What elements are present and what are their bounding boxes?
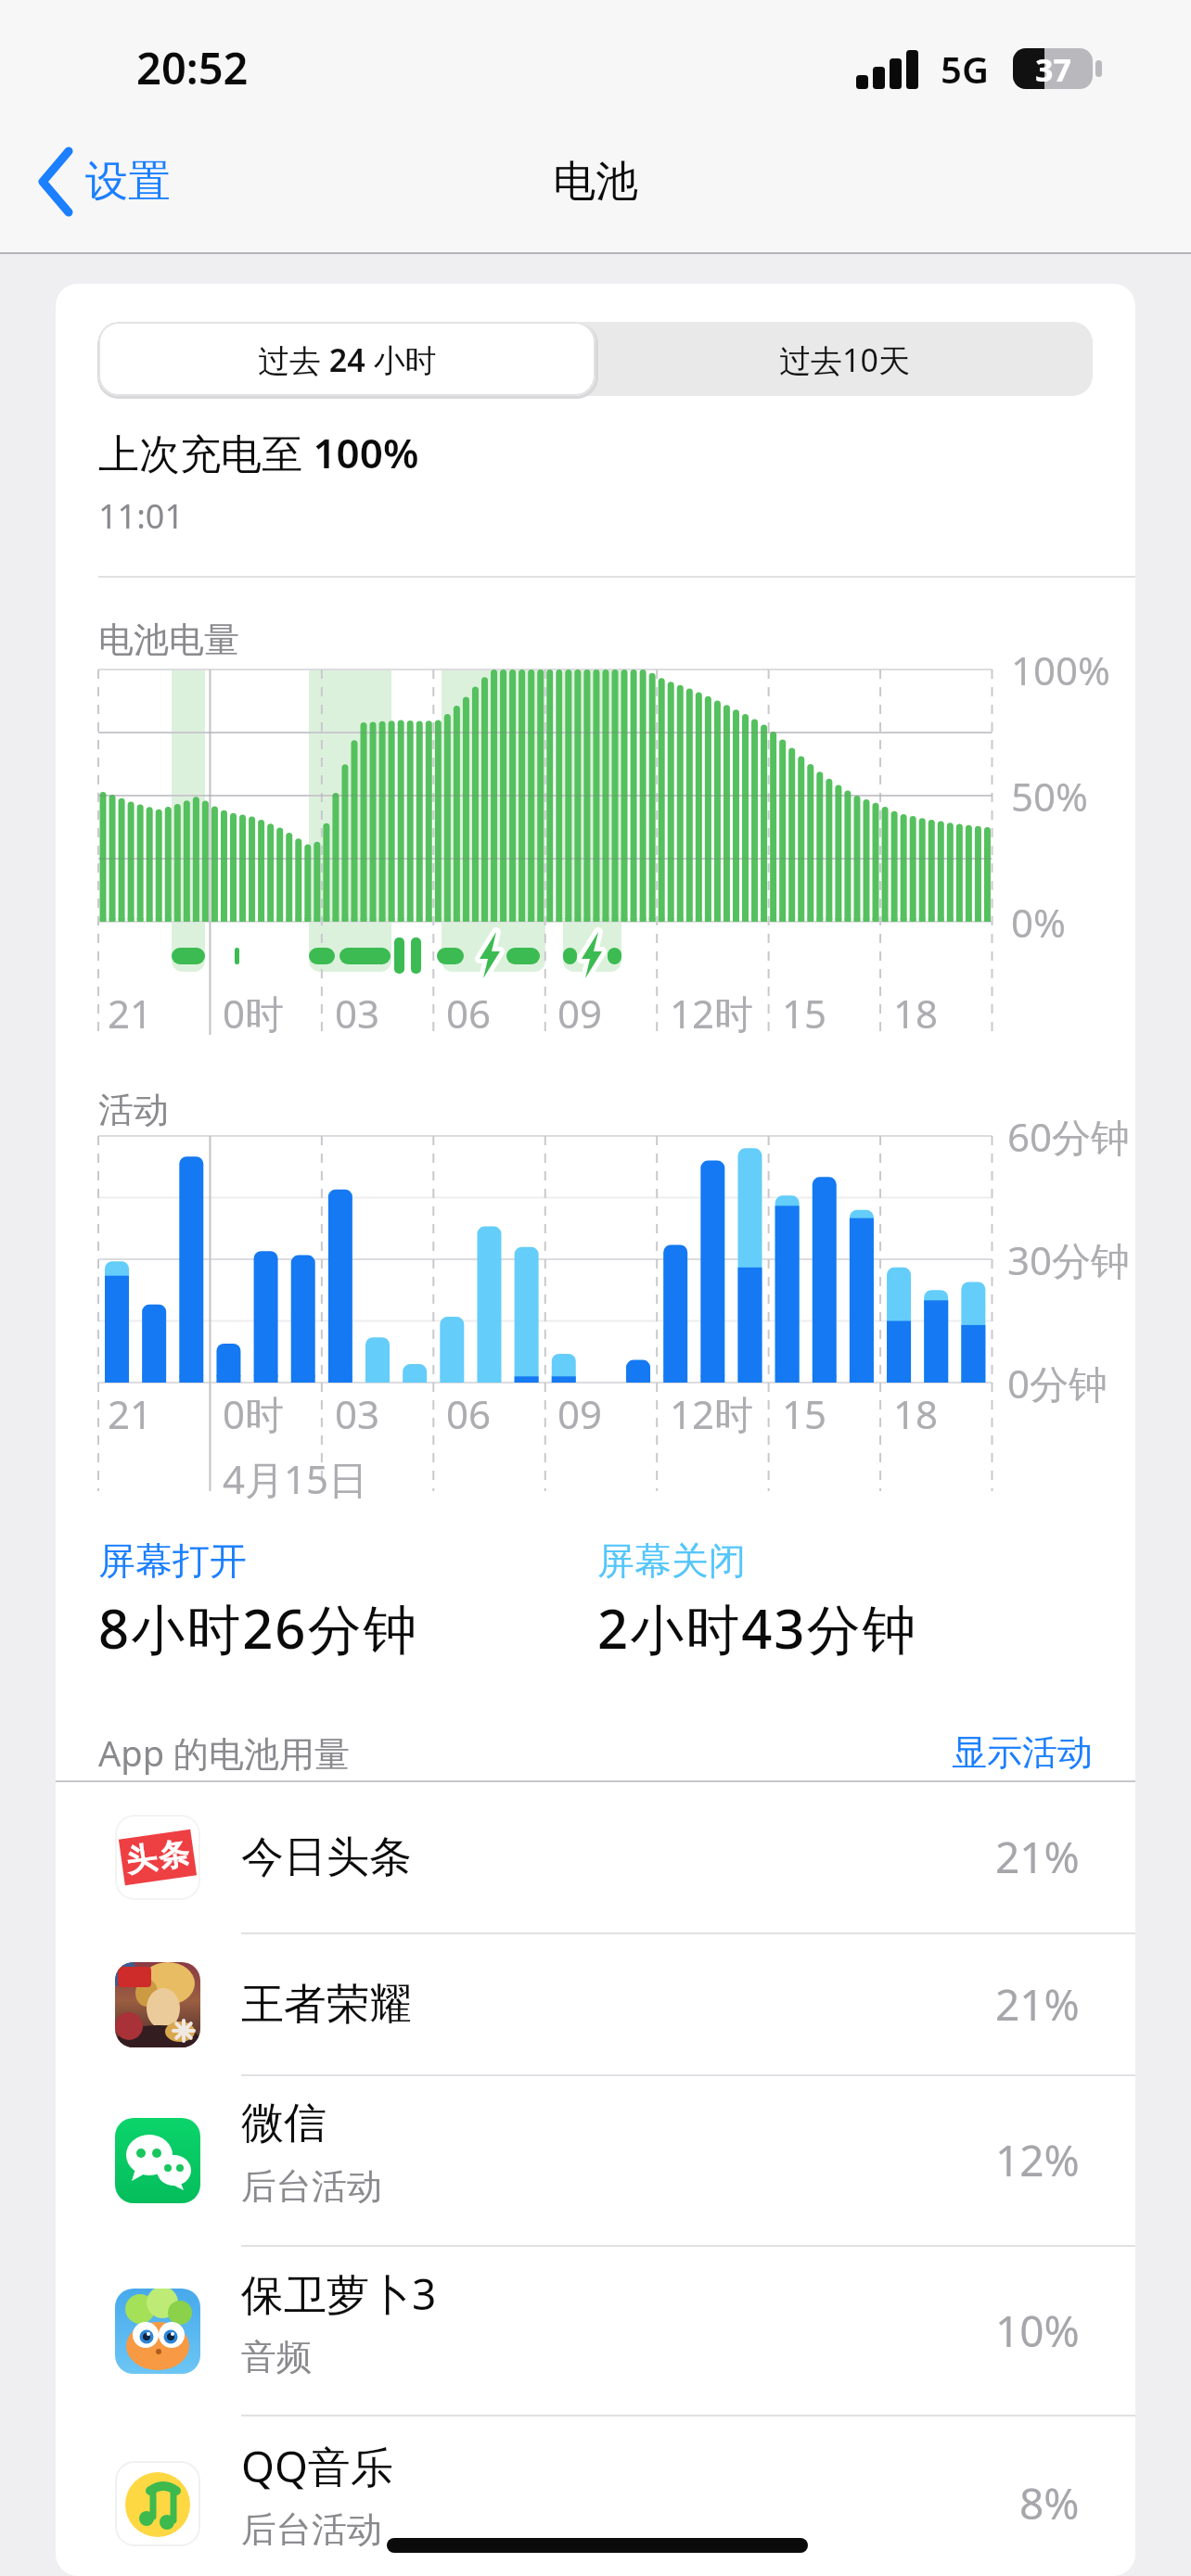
staticText: 20:52: [136, 38, 249, 97]
staticText: 屏幕关闭: [597, 1537, 746, 1584]
staticText: 电池: [553, 155, 638, 209]
button[interactable]: [56, 1933, 1135, 2075]
staticText: 音频: [241, 2335, 312, 2379]
staticText: 15: [782, 1387, 827, 1440]
staticText: 06: [446, 987, 492, 1039]
staticText: 18: [893, 987, 939, 1039]
staticText: 上次充电至 100%: [98, 425, 419, 480]
staticText: 06: [446, 1387, 492, 1440]
staticText: 18: [893, 1387, 939, 1440]
staticText: 09: [557, 987, 603, 1039]
button[interactable]: [56, 2075, 1135, 2246]
staticText: 21%: [995, 1828, 1080, 1886]
staticText: 8%: [1019, 2474, 1080, 2532]
staticText: 显示活动: [952, 1730, 1093, 1775]
staticText: 15: [782, 987, 827, 1039]
staticText: QQ音乐: [241, 2437, 393, 2495]
button[interactable]: [56, 2416, 1135, 2576]
staticText: 09: [557, 1387, 603, 1440]
button[interactable]: [56, 2246, 1135, 2416]
staticText: 屏幕打开: [98, 1537, 247, 1584]
staticText: 37: [1035, 48, 1071, 91]
staticText: 21: [108, 987, 153, 1039]
staticText: 微信: [241, 2097, 327, 2150]
staticText: 11:01: [98, 493, 185, 539]
staticText: 50%: [1011, 770, 1088, 823]
staticText: 电池电量: [98, 618, 239, 662]
staticText: 保卫萝卜3: [241, 2264, 437, 2323]
staticText: 12%: [995, 2131, 1080, 2189]
staticText: 后台活动: [241, 2164, 382, 2209]
staticText: 过去 24 小时: [258, 338, 437, 381]
staticText: 10%: [995, 2302, 1080, 2360]
staticText: 设置: [85, 155, 171, 209]
staticText: 王者荣耀: [241, 1978, 412, 2032]
staticText: 活动: [98, 1088, 169, 1132]
staticText: 5G: [941, 44, 989, 94]
button[interactable]: [56, 1781, 1135, 1933]
staticText: 12时: [670, 987, 754, 1039]
staticText: 100%: [1011, 644, 1110, 696]
staticText: App 的电池用量: [98, 1728, 350, 1777]
staticText: 03: [335, 1387, 380, 1440]
staticText: 03: [335, 987, 380, 1039]
staticText: 过去10天: [779, 338, 910, 381]
staticText: 0%: [1011, 896, 1066, 949]
button[interactable]: [98, 322, 595, 396]
staticText: 60分钟: [1007, 1110, 1131, 1163]
staticText: 21: [108, 1387, 153, 1440]
button[interactable]: [595, 322, 1093, 396]
staticText: 头条: [123, 1834, 193, 1881]
staticText: 0分钟: [1007, 1357, 1108, 1409]
staticText: 0时: [223, 987, 285, 1039]
button[interactable]: [928, 1720, 1095, 1785]
staticText: 2小时43分钟: [597, 1591, 918, 1664]
staticText: 0时: [223, 1387, 285, 1440]
staticText: 12时: [670, 1387, 754, 1440]
staticText: 30分钟: [1007, 1233, 1131, 1286]
button[interactable]: [28, 139, 213, 223]
staticText: 今日头条: [241, 1830, 412, 1884]
staticText: 8小时26分钟: [98, 1591, 419, 1664]
staticText: 4月15日: [223, 1452, 368, 1505]
staticText: 21%: [995, 1975, 1080, 2034]
staticText: 后台活动: [241, 2507, 382, 2552]
